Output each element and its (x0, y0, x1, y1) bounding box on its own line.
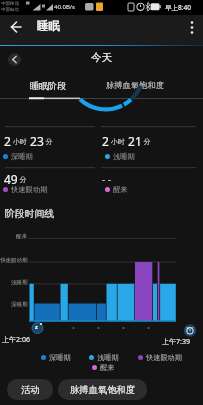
staticText: 今天 (91, 51, 112, 64)
button[interactable]: 活动 (7, 379, 53, 400)
staticText: 小时 (11, 137, 27, 147)
staticText: 脉搏血氧饱和度 (70, 384, 136, 396)
staticText: 阶段时间线 (5, 208, 54, 220)
staticText: 上午7:39 (162, 337, 190, 347)
button[interactable] (0, 15, 203, 45)
staticText: 2 (102, 133, 109, 149)
staticText: 深睡期 (11, 152, 33, 161)
staticText: 中国移动 (1, 1, 19, 7)
staticText: z (40, 321, 42, 326)
staticText: 上午2:06 (2, 335, 30, 345)
staticText: 分 (142, 137, 151, 147)
staticText: 23 (27, 133, 44, 149)
staticText: 快速眼动期 (11, 185, 48, 194)
staticText: 浅睡期 (11, 279, 28, 286)
staticText: 睡眠 (37, 19, 60, 33)
button[interactable] (4, 17, 30, 43)
staticText: 2 (4, 133, 11, 149)
staticText: 深睡期 (49, 353, 71, 362)
staticText: 小时 (109, 137, 125, 147)
staticText: 早上8:40 (165, 3, 191, 12)
staticText: 21 (125, 133, 142, 149)
button[interactable]: 睡眠阶段 (26, 75, 84, 98)
staticText: 快速眼动期 (0, 257, 28, 264)
button[interactable]: 脉搏血氧饱和度 (58, 379, 147, 400)
staticText: 中国电信 (1, 7, 19, 13)
staticText: 快速眼动期 (146, 353, 182, 362)
staticText: 睡眠阶段 (30, 80, 66, 91)
staticText: 40.0B/s (54, 3, 75, 11)
staticText: 脉搏血氧饱和度 (106, 80, 165, 90)
button[interactable] (6, 51, 23, 68)
button[interactable]: 脉搏血氧饱和度 (102, 75, 166, 98)
staticText: 分 (18, 175, 27, 185)
staticText: - - (102, 172, 112, 186)
button[interactable] (184, 17, 202, 43)
staticText: 分 (44, 137, 53, 147)
staticText: 醒来 (113, 185, 128, 194)
staticText: 活动 (21, 384, 40, 396)
staticText: 浅睡期 (97, 353, 119, 362)
staticText: 醒来 (16, 233, 27, 240)
staticText: z (35, 323, 38, 330)
staticText: 49 (4, 171, 18, 187)
staticText: 浅睡期 (113, 152, 135, 161)
staticText: 醒来 (100, 363, 115, 372)
staticText: 深睡期 (11, 301, 28, 308)
